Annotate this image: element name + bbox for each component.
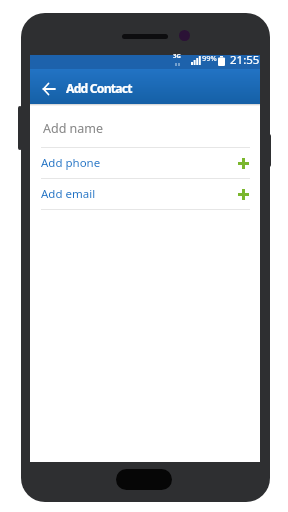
- staticText: 99%: [202, 53, 217, 63]
- staticText: 3G: [173, 52, 181, 60]
- staticText: Add phone: [41, 155, 101, 171]
- staticText: Add Contact: [66, 80, 132, 97]
- staticText: Add name: [43, 120, 104, 137]
- staticText: Add email: [41, 186, 96, 202]
- button[interactable]: Add phone: [34, 148, 255, 178]
- button[interactable]: Add email: [34, 179, 255, 209]
- staticText: 21:55: [230, 52, 260, 66]
- button[interactable]: Add name: [34, 113, 255, 147]
- button[interactable]: [36, 76, 61, 101]
